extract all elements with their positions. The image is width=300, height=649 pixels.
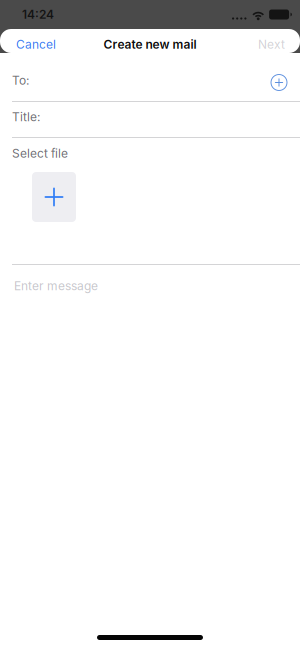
staticText: To: (12, 73, 29, 88)
staticText: Title: (12, 110, 40, 124)
staticText: Select file (12, 146, 68, 161)
button[interactable]: Add recipient (268, 68, 290, 92)
staticText: Enter message (14, 279, 98, 293)
button[interactable]: Add file (32, 172, 76, 222)
staticText: Create new mail (103, 37, 196, 52)
button[interactable]: Next (248, 30, 300, 59)
staticText: 14:24 (22, 7, 54, 22)
staticText: Cancel (16, 37, 56, 52)
button[interactable]: Cancel (0, 30, 66, 59)
staticText: Next (258, 37, 285, 52)
